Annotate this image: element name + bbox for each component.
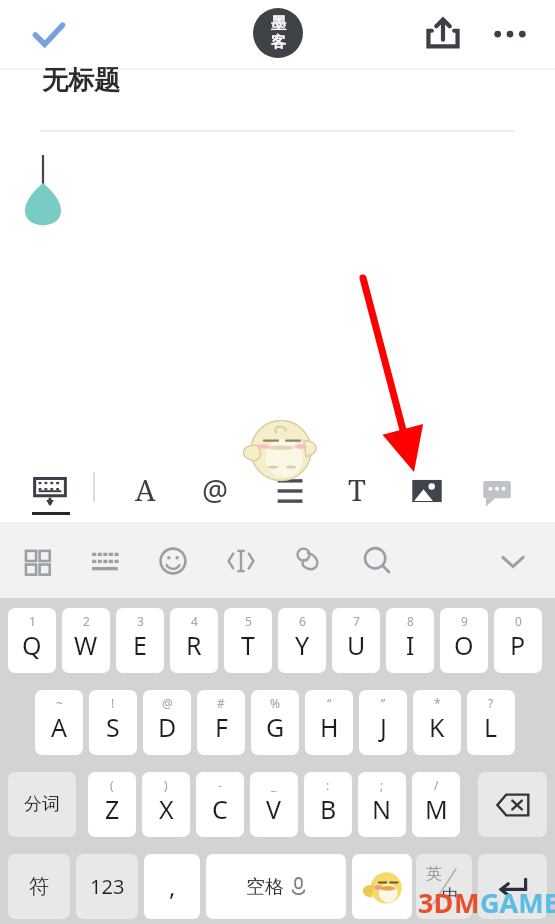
staticText: B <box>320 792 337 826</box>
staticText: F <box>215 710 228 744</box>
button[interactable]: ? <box>467 690 515 755</box>
button[interactable]: Move cursor <box>218 538 264 584</box>
button[interactable]: Clipboard <box>286 538 332 584</box>
staticText: ? <box>488 695 494 711</box>
button[interactable]: Insert image <box>404 468 450 514</box>
staticText: I <box>406 628 415 662</box>
staticText: 墨 <box>271 14 286 33</box>
staticText: 9 <box>461 613 468 629</box>
button[interactable]: Switch language <box>416 854 472 919</box>
staticText: V <box>266 792 282 826</box>
button[interactable]: Apps <box>14 538 60 584</box>
button[interactable]: - <box>196 772 244 837</box>
staticText: ! <box>111 695 115 711</box>
staticText: K <box>429 710 445 744</box>
button[interactable]: / <box>412 772 460 837</box>
button[interactable]: * <box>413 690 461 755</box>
button[interactable]: ” <box>359 690 407 755</box>
staticText: 2 <box>83 613 90 629</box>
button[interactable]: 空格 <box>206 854 346 919</box>
staticText: 英 <box>426 864 442 884</box>
button[interactable]: # <box>197 690 245 755</box>
button[interactable]: ( <box>88 772 136 837</box>
staticText: 1 <box>29 613 36 629</box>
button[interactable]: 1 <box>8 608 56 673</box>
button[interactable]: 123 <box>76 854 138 919</box>
button[interactable]: Collapse keyboard <box>490 538 536 584</box>
staticText: C <box>212 792 228 826</box>
button[interactable]: App logo <box>253 8 303 58</box>
button[interactable]: ~ <box>35 690 83 755</box>
button[interactable]: Backspace <box>478 772 547 837</box>
staticText: Y <box>295 628 310 662</box>
button[interactable]: ; <box>358 772 406 837</box>
staticText: 123 <box>90 873 125 900</box>
button[interactable]: 2 <box>62 608 110 673</box>
staticText: U <box>347 628 366 662</box>
staticText: G <box>266 710 285 744</box>
button[interactable]: 9 <box>440 608 488 673</box>
button[interactable]: 3 <box>116 608 164 673</box>
staticText: X <box>159 792 174 826</box>
button[interactable]: 0 <box>494 608 542 673</box>
button[interactable]: Comment <box>474 468 520 514</box>
button[interactable]: “ <box>305 690 353 755</box>
button[interactable]: % <box>251 690 299 755</box>
button[interactable]: Enter <box>478 854 547 919</box>
button[interactable]: Share <box>415 5 471 61</box>
button[interactable]: 符 <box>8 854 70 919</box>
staticText: * <box>434 695 441 711</box>
button[interactable]: Mention <box>192 466 238 512</box>
button[interactable]: Done <box>18 4 80 66</box>
staticText: - <box>218 777 222 793</box>
button[interactable]: ! <box>89 690 137 755</box>
staticText: 分词 <box>24 793 60 816</box>
staticText: _ <box>271 777 277 793</box>
button[interactable]: 6 <box>278 608 326 673</box>
staticText: ” <box>381 695 386 711</box>
button[interactable]: , <box>144 854 200 919</box>
staticText: 3D <box>418 884 454 921</box>
staticText: GAME <box>480 884 555 921</box>
staticText: % <box>270 695 280 711</box>
staticText: A <box>51 710 67 744</box>
staticText: ) <box>164 777 168 793</box>
staticText: E <box>133 628 147 662</box>
staticText: 4 <box>191 613 198 629</box>
button[interactable]: _ <box>250 772 298 837</box>
button[interactable]: Numbered list <box>262 468 308 514</box>
button[interactable]: Font <box>122 466 168 512</box>
staticText: A <box>135 470 156 509</box>
button[interactable]: 7 <box>332 608 380 673</box>
staticText: 空格 <box>246 875 284 899</box>
button[interactable]: ) <box>142 772 190 837</box>
button[interactable]: 5 <box>224 608 272 673</box>
staticText: @ <box>202 470 229 509</box>
button[interactable]: Keyboard mascot <box>352 854 412 919</box>
staticText: 5 <box>245 613 252 629</box>
staticText: 中 <box>442 885 459 906</box>
staticText: Z <box>105 792 120 826</box>
staticText: # <box>217 695 225 711</box>
button[interactable]: : <box>304 772 352 837</box>
staticText: T <box>348 470 366 509</box>
staticText: 6 <box>299 613 306 629</box>
staticText: D <box>158 710 177 744</box>
staticText: 符 <box>29 874 49 899</box>
button[interactable]: 8 <box>386 608 434 673</box>
button[interactable]: More options <box>482 5 538 61</box>
staticText: M <box>454 884 480 921</box>
button[interactable]: 4 <box>170 608 218 673</box>
button[interactable]: Search <box>354 538 400 584</box>
staticText: 3 <box>137 613 144 629</box>
button[interactable]: Emoji <box>150 538 196 584</box>
staticText: S <box>106 710 120 744</box>
staticText: P <box>510 628 526 662</box>
staticText: R <box>186 628 202 662</box>
button[interactable]: Hide keyboard <box>26 466 74 514</box>
button[interactable]: @ <box>143 690 191 755</box>
button[interactable]: Keyboard layout <box>82 538 128 584</box>
button[interactable]: 分词 <box>8 772 76 837</box>
staticText: W <box>74 628 98 662</box>
button[interactable]: Text style <box>334 466 380 512</box>
